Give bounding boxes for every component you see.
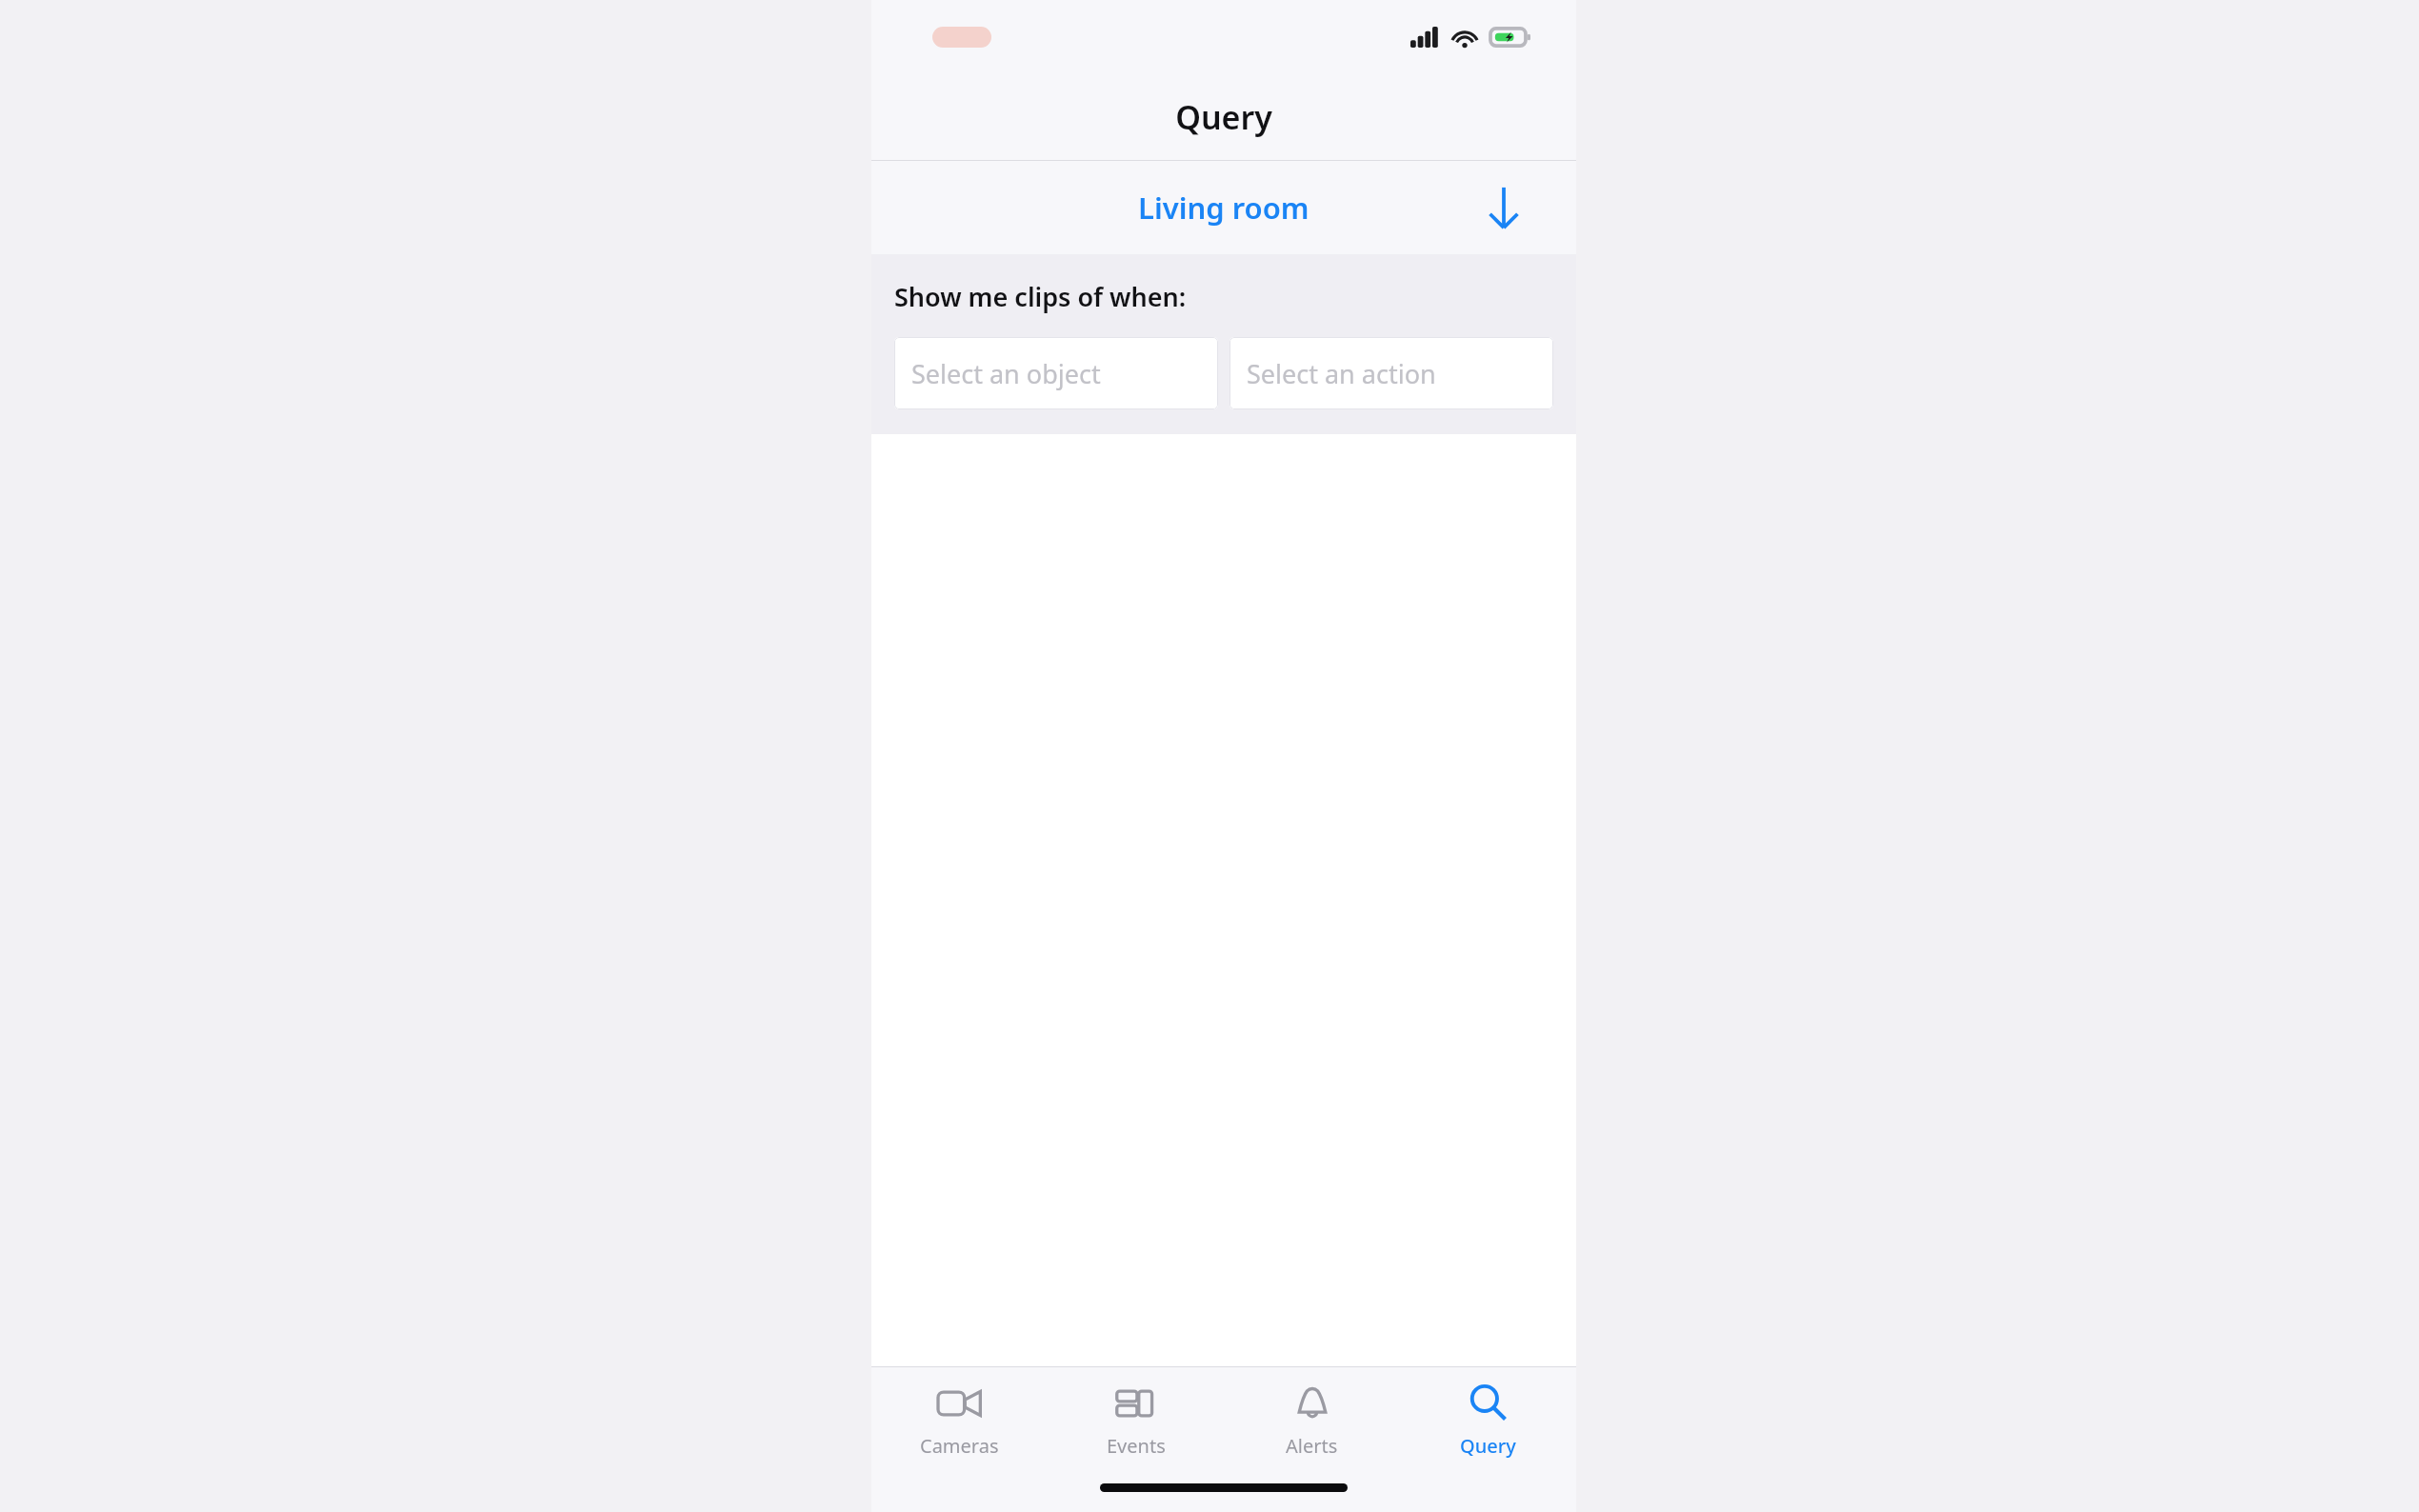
button[interactable]: Events bbox=[1048, 1367, 1224, 1472]
staticText: Cameras bbox=[920, 1433, 999, 1459]
staticText: Query bbox=[1460, 1433, 1516, 1459]
button[interactable]: Select an object bbox=[894, 337, 1218, 409]
staticText: Events bbox=[1107, 1433, 1166, 1459]
button[interactable]: Alerts bbox=[1224, 1367, 1400, 1472]
staticText: Living room bbox=[1138, 188, 1309, 228]
button[interactable]: Living room bbox=[1138, 188, 1309, 228]
button[interactable]: Query bbox=[1400, 1367, 1576, 1472]
staticText: Select an action bbox=[1247, 356, 1436, 391]
button[interactable]: Select an action bbox=[1229, 337, 1553, 409]
button[interactable]: Cameras bbox=[871, 1367, 1048, 1472]
staticText: Alerts bbox=[1286, 1433, 1338, 1459]
staticText: Query bbox=[1175, 95, 1272, 139]
staticText: Show me clips of when: bbox=[894, 279, 1187, 314]
button[interactable]: Download clips bbox=[1477, 181, 1530, 234]
staticText: Select an object bbox=[911, 356, 1101, 391]
